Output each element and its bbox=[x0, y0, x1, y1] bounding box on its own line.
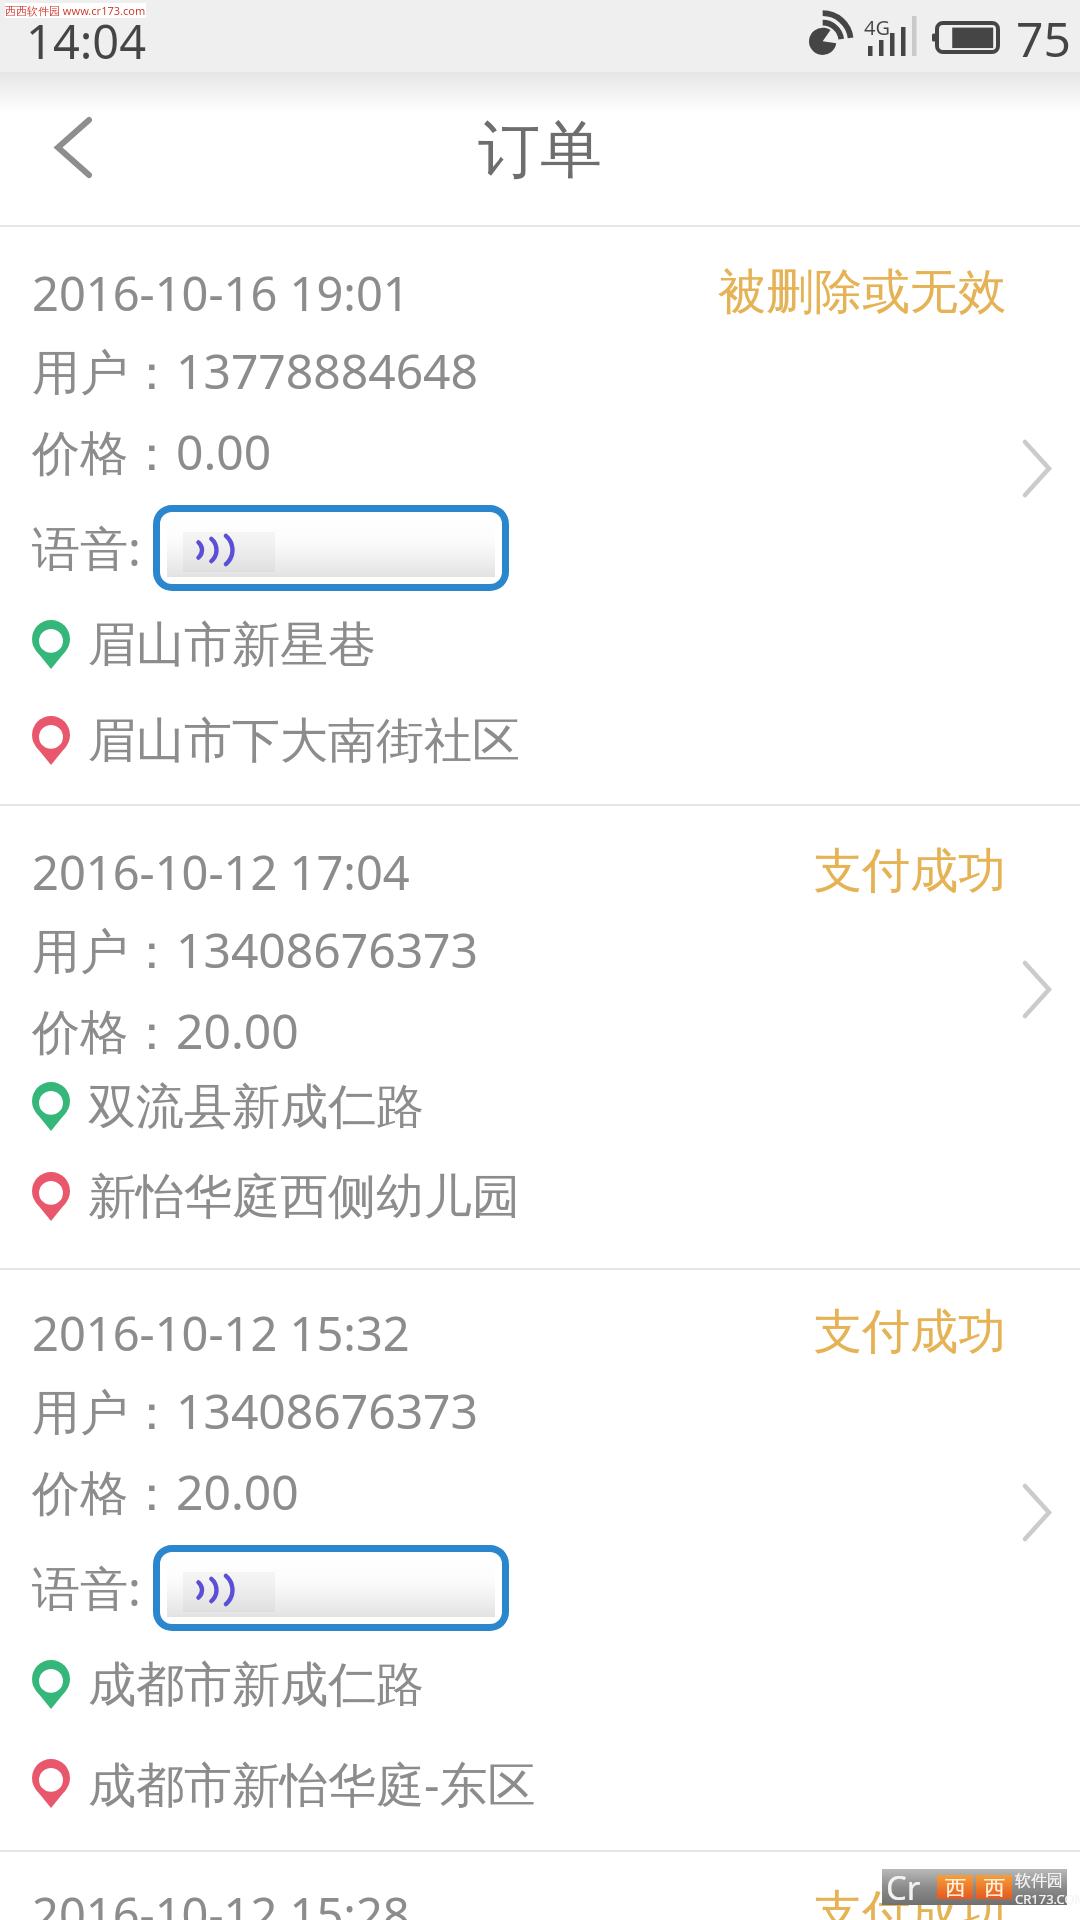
staticText: 西 bbox=[945, 1875, 966, 1899]
staticText: 支付成功 bbox=[814, 841, 1006, 901]
staticText: 2016-10-12 15:28 bbox=[32, 1882, 410, 1920]
staticText: 被删除或无效 bbox=[718, 262, 1006, 322]
staticText: 支付成功 bbox=[814, 1883, 1006, 1920]
button[interactable]: Play voice message bbox=[153, 1545, 509, 1631]
staticText: 2016-10-16 19:01 bbox=[32, 261, 410, 325]
staticText: 眉山市新星巷 bbox=[88, 615, 376, 675]
staticText: 双流县新成仁路 bbox=[88, 1077, 424, 1137]
button[interactable]: 2016-10-16 19:01 bbox=[0, 227, 1080, 804]
staticText: 2016-10-12 17:04 bbox=[32, 840, 410, 904]
staticText: 用户：13408676373 bbox=[32, 1378, 479, 1444]
staticText: 14:04 bbox=[26, 9, 147, 73]
staticText: 成都市新成仁路 bbox=[88, 1655, 424, 1715]
button[interactable]: 2016-10-12 17:04 bbox=[0, 806, 1080, 1268]
button[interactable]: 2016-10-12 15:32 bbox=[0, 1270, 1080, 1850]
staticText: 软件园 bbox=[1015, 1871, 1063, 1891]
staticText: 西 bbox=[984, 1875, 1005, 1899]
staticText: 新怡华庭西侧幼儿园 bbox=[88, 1167, 520, 1227]
staticText: 价格：20.00 bbox=[32, 1459, 299, 1525]
staticText: 语音: bbox=[32, 1555, 141, 1621]
staticText: 用户：13408676373 bbox=[32, 917, 479, 983]
staticText: 眉山市下大南街社区 bbox=[88, 711, 520, 771]
staticText: 价格：0.00 bbox=[32, 419, 272, 485]
button[interactable]: 2016-10-12 15:28 bbox=[0, 1852, 1080, 1920]
staticText: 4G bbox=[864, 14, 890, 41]
button[interactable]: Back bbox=[0, 72, 160, 222]
staticText: CR173.COM bbox=[1015, 1890, 1080, 1908]
button[interactable]: Play voice message bbox=[153, 505, 509, 591]
staticText: 用户：13778884648 bbox=[32, 338, 479, 404]
staticText: 价格：20.00 bbox=[32, 998, 299, 1064]
staticText: 支付成功 bbox=[814, 1302, 1006, 1362]
staticText: 订单 bbox=[478, 111, 602, 189]
staticText: 75 bbox=[1016, 6, 1071, 71]
staticText: Cr bbox=[886, 1865, 921, 1901]
staticText: 成都市新怡华庭-东区 bbox=[88, 1751, 536, 1817]
staticText: 语音: bbox=[32, 515, 141, 581]
staticText: 西西软件园 www.cr173.com bbox=[5, 3, 146, 18]
staticText: 2016-10-12 15:32 bbox=[32, 1301, 410, 1365]
